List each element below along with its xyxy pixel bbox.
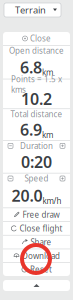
staticText: Terrain — [15, 4, 46, 16]
button[interactable]: Close flight — [3, 222, 70, 235]
staticText: km — [42, 67, 53, 78]
staticText: Free draw — [22, 209, 59, 220]
staticText: 0:20 — [21, 151, 52, 172]
button[interactable]: Increase — [58, 141, 67, 150]
button[interactable]: Decrease — [6, 141, 15, 150]
staticText: Total distance — [10, 109, 62, 119]
staticText: 6.9 — [20, 119, 42, 140]
staticText: Close flight — [19, 223, 62, 234]
button[interactable]: Free draw — [3, 208, 70, 221]
staticText: Points = 1.5 x kms — [11, 74, 62, 95]
staticText: 10.2 — [21, 88, 52, 109]
staticText: km/h — [42, 195, 61, 206]
button[interactable]: Increase — [58, 174, 67, 183]
staticText: Close — [30, 33, 51, 44]
staticText: km — [42, 130, 53, 140]
staticText: Share — [30, 237, 51, 247]
button[interactable]: Share — [3, 236, 70, 249]
button[interactable]: Reset — [3, 263, 70, 276]
button[interactable]: Decrease — [6, 174, 15, 183]
staticText: 6.8 — [20, 57, 42, 78]
button[interactable]: Collapse — [3, 280, 70, 291]
button[interactable]: Download — [3, 249, 70, 262]
staticText: Open distance — [9, 45, 64, 56]
staticText: 20.0 — [11, 185, 42, 206]
staticText: Speed — [24, 173, 48, 184]
staticText: Download — [22, 250, 60, 261]
staticText: Reset — [30, 264, 52, 275]
button[interactable]: Close — [3, 32, 70, 45]
button[interactable]: Terrain — [4, 3, 61, 17]
staticText: Duration — [20, 140, 53, 151]
